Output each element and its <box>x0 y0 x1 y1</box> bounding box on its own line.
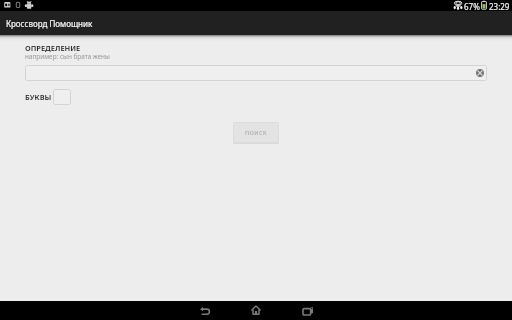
staticText: 67% <box>464 1 480 12</box>
button[interactable]: Home <box>243 301 269 320</box>
staticText: БУКВЫ <box>25 92 52 102</box>
staticText: 23:29 <box>489 1 510 12</box>
staticText: ПОИСК <box>245 129 268 137</box>
button[interactable]: ПОИСК <box>233 122 279 143</box>
button[interactable] <box>53 89 71 105</box>
staticText: ОПРЕДЕЛЕНИЕ <box>25 43 81 53</box>
button[interactable]: Clear text <box>25 65 487 81</box>
button[interactable]: Recent apps <box>295 301 321 320</box>
staticText: Кроссворд Помощник <box>6 18 93 29</box>
button[interactable]: Back <box>192 301 218 320</box>
staticText: например: сын брата жены <box>25 52 110 61</box>
button[interactable]: Clear text <box>476 69 484 77</box>
